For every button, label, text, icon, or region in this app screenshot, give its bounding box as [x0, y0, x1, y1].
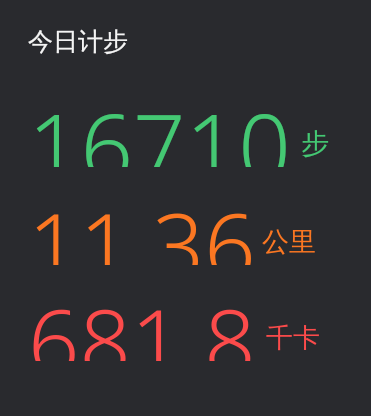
button[interactable]: Steps today	[0, 83, 371, 167]
staticText: 16710	[28, 83, 291, 167]
button[interactable]: Calories burned	[0, 279, 371, 361]
staticText: 千卡	[266, 321, 320, 355]
staticText: 11.36	[28, 183, 256, 265]
button[interactable]: Distance in kilometers	[0, 183, 371, 265]
staticText: 今日计步	[28, 26, 128, 57]
staticText: 681.8	[28, 279, 256, 361]
staticText: 步	[301, 126, 329, 161]
staticText: 公里	[262, 225, 316, 259]
